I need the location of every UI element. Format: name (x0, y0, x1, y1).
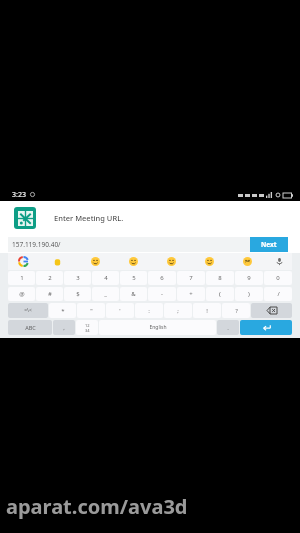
staticText: 34 (85, 328, 90, 333)
button[interactable]: " (77, 303, 105, 318)
staticText: / (277, 290, 280, 298)
button[interactable]: 4 (92, 271, 119, 285)
staticText: . (227, 324, 229, 332)
button[interactable]: , (53, 320, 75, 335)
button[interactable]: Numbers (76, 320, 98, 335)
staticText: $ (76, 290, 80, 298)
staticText: ! (206, 307, 208, 315)
staticText: 12 (85, 323, 90, 328)
button[interactable]: 0 (264, 271, 292, 285)
staticText: 0 (276, 274, 280, 282)
staticText: Next (261, 240, 277, 249)
staticText: =\< (24, 307, 32, 314)
button[interactable]: 6 (148, 271, 176, 285)
staticText: 4 (104, 274, 108, 282)
button[interactable]: 5 (120, 271, 147, 285)
staticText: 9 (247, 274, 251, 282)
staticText: Enter Meeting URL. (54, 213, 124, 223)
button[interactable]: # (36, 287, 63, 301)
staticText: : (148, 307, 150, 315)
button[interactable]: 1 (8, 271, 35, 285)
staticText: 3:23 (12, 190, 26, 200)
staticText: 7 (189, 274, 193, 282)
staticText: 2 (48, 274, 52, 282)
button[interactable]: + (177, 287, 205, 301)
staticText: 8 (218, 274, 222, 282)
staticText: * (61, 307, 65, 315)
staticText: , (63, 324, 65, 332)
button[interactable]: - (148, 287, 176, 301)
button[interactable]: App icon (0, 201, 300, 235)
staticText: ' (119, 307, 121, 315)
staticText: ABC (25, 324, 36, 331)
staticText: # (48, 290, 52, 298)
button[interactable]: 7 (177, 271, 205, 285)
staticText: ? (235, 307, 238, 315)
button[interactable]: * (49, 303, 76, 318)
staticText: & (131, 290, 136, 298)
button[interactable]: Emoji cool (152, 253, 190, 270)
button[interactable]: ? (222, 303, 250, 318)
button[interactable]: Backspace (251, 303, 292, 318)
button[interactable]: ABC (8, 320, 52, 335)
staticText: English (149, 324, 167, 331)
other: App icon (14, 207, 36, 229)
button[interactable]: & (120, 287, 147, 301)
staticText: 157.119.190.40/ (12, 240, 61, 249)
button[interactable]: : (135, 303, 163, 318)
staticText: 3 (76, 274, 80, 282)
staticText: ) (248, 290, 250, 298)
button[interactable]: @ (8, 287, 35, 301)
staticText: + (189, 290, 193, 298)
button[interactable]: Emoji sad (228, 253, 266, 270)
button[interactable]: ! (193, 303, 221, 318)
button[interactable]: Emoji smirk (76, 253, 114, 270)
button[interactable]: ; (164, 303, 192, 318)
button[interactable]: ( (206, 287, 234, 301)
button[interactable]: 8 (206, 271, 234, 285)
button[interactable]: Next (250, 237, 288, 252)
staticText: ; (177, 307, 179, 315)
button[interactable]: Emoji hand (38, 253, 76, 270)
button[interactable]: 157.119.190.40/ (8, 237, 250, 252)
button[interactable]: Enter (240, 320, 292, 335)
button[interactable]: 2 (36, 271, 63, 285)
button[interactable]: 9 (235, 271, 263, 285)
staticText: " (90, 307, 93, 315)
button[interactable]: =\< (8, 303, 48, 318)
button[interactable]: Voice input (266, 253, 292, 270)
staticText: 1 (20, 274, 24, 282)
staticText: 5 (132, 274, 136, 282)
staticText: aparat.com/ava3d (6, 493, 188, 520)
button[interactable]: English (99, 320, 216, 335)
staticText: ( (219, 290, 221, 298)
button[interactable]: $ (64, 287, 91, 301)
button[interactable]: 3 (64, 271, 91, 285)
button[interactable]: Emoji grin (114, 253, 152, 270)
staticText: @ (19, 290, 25, 298)
staticText: 6 (160, 274, 164, 282)
button[interactable]: Emoji neutral (190, 253, 228, 270)
staticText: - (161, 290, 163, 298)
button[interactable]: Google search (8, 253, 38, 270)
button[interactable]: _ (92, 287, 119, 301)
button[interactable]: / (264, 287, 292, 301)
button[interactable]: ) (235, 287, 263, 301)
staticText: _ (104, 290, 107, 298)
